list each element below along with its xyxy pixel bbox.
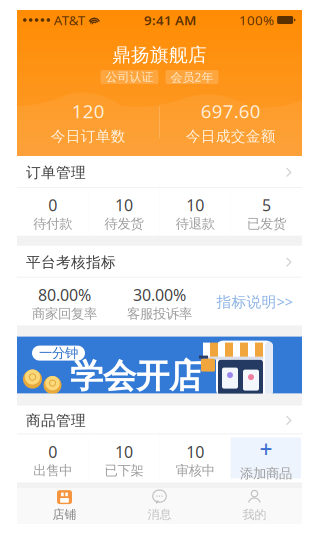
staticText: AT&T (54, 11, 85, 29)
staticText: 一分钟 (39, 345, 78, 361)
staticText: 指标说明>> (216, 292, 292, 311)
staticText: 店铺 (52, 507, 76, 522)
staticText: 客服投诉率 (127, 305, 192, 322)
staticText: + (259, 434, 272, 464)
staticText: 学会开店 (70, 356, 202, 396)
staticText: 鼎扬旗舰店 (112, 43, 207, 66)
button[interactable]: 10 (159, 434, 231, 482)
staticText: 697.60 (201, 99, 261, 123)
button[interactable]: + (231, 434, 302, 482)
staticText: 今日订单数 (51, 127, 126, 145)
staticText: 待付款 (33, 216, 72, 232)
button[interactable]: 商品管理 (17, 406, 302, 434)
staticText: 30.00% (133, 284, 186, 305)
button[interactable]: 30.00% (112, 278, 207, 326)
button[interactable]: 我的 (207, 488, 302, 524)
staticText: 审核中 (176, 462, 215, 479)
staticText: 待发货 (104, 216, 143, 232)
staticText: 10 (115, 194, 133, 216)
staticText: 商品管理 (26, 412, 86, 430)
button[interactable]: 指标说明>> (207, 278, 302, 326)
staticText: 0 (48, 441, 57, 462)
staticText: 100% (239, 11, 274, 29)
button[interactable]: 0 (17, 434, 88, 482)
button[interactable]: 5 (231, 188, 302, 236)
button[interactable]: 0 (17, 188, 88, 236)
staticText: 9:41 AM (144, 11, 196, 29)
staticText: 10 (186, 194, 204, 216)
button[interactable]: 平台考核指标 (17, 246, 302, 277)
staticText: 120 (72, 99, 105, 123)
button[interactable]: 一分钟 (17, 337, 302, 394)
staticText: 已下架 (104, 462, 143, 479)
staticText: 平台考核指标 (26, 253, 116, 271)
staticText: 待退款 (176, 216, 215, 232)
button[interactable]: 10 (88, 434, 159, 482)
staticText: 会员2年 (170, 69, 213, 85)
staticText: 10 (186, 441, 204, 462)
staticText: 5 (262, 194, 271, 216)
staticText: 公司认证 (105, 70, 153, 84)
staticText: 今日成交金额 (186, 127, 276, 145)
button[interactable]: 10 (159, 188, 231, 236)
staticText: 80.00% (38, 284, 91, 305)
staticText: 10 (115, 441, 133, 462)
staticText: 0 (48, 194, 57, 216)
staticText: 出售中 (33, 462, 72, 479)
button[interactable]: 店铺 (17, 488, 112, 524)
staticText: 添加商品 (240, 465, 292, 482)
button[interactable]: 消息 (112, 488, 207, 524)
staticText: 消息 (147, 507, 171, 522)
button[interactable]: 80.00% (17, 278, 112, 326)
staticText: 商家回复率 (32, 305, 97, 322)
staticText: 订单管理 (26, 163, 86, 181)
button[interactable]: 10 (88, 188, 159, 236)
staticText: 我的 (242, 507, 266, 522)
button[interactable]: 订单管理 (17, 156, 302, 187)
staticText: 已发货 (247, 216, 286, 232)
